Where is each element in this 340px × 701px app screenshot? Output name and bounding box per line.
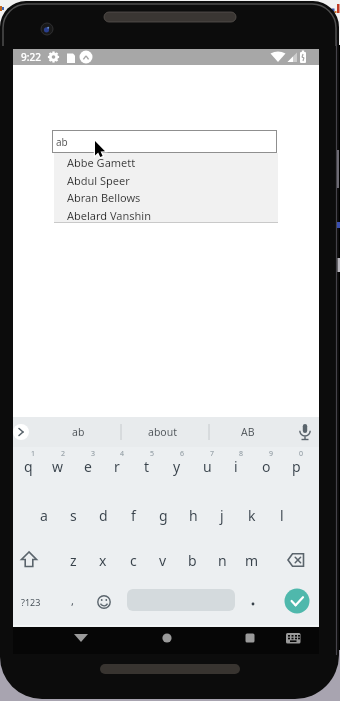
staticText: a [40, 506, 48, 525]
button[interactable]: AB [218, 421, 278, 443]
staticText: 6 [180, 449, 185, 459]
button[interactable]: ab [52, 130, 277, 153]
staticText: g [159, 506, 168, 525]
staticText: u [203, 457, 212, 476]
staticText: m [245, 551, 259, 570]
staticText: o [262, 457, 271, 476]
staticText: x [99, 551, 107, 570]
button[interactable]: g [149, 500, 177, 530]
staticText: c [130, 551, 137, 570]
button[interactable]: i [222, 451, 250, 481]
staticText: z [70, 551, 77, 570]
button[interactable]: s [59, 500, 87, 530]
staticText: j [220, 506, 224, 525]
button[interactable] [271, 588, 297, 614]
button[interactable]: d [89, 500, 117, 530]
staticText: y [173, 457, 181, 476]
staticText: i [234, 457, 238, 476]
button[interactable]: v [149, 545, 177, 575]
button[interactable]: e [74, 451, 102, 481]
button[interactable]: about [127, 421, 197, 443]
staticText: , [71, 593, 74, 608]
staticText: about [148, 425, 177, 439]
staticText: ab [72, 425, 85, 439]
staticText: e [84, 457, 92, 476]
button[interactable]: f [119, 500, 147, 530]
staticText: 9:22 [21, 50, 41, 64]
staticText: l [280, 506, 284, 525]
staticText: 7 [210, 449, 215, 459]
button[interactable]: , [62, 587, 82, 613]
staticText: AB [241, 425, 255, 439]
staticText: Abdul Speer [67, 173, 130, 188]
staticText: p [292, 457, 301, 476]
button[interactable]: a [30, 500, 58, 530]
staticText: s [70, 506, 77, 525]
button[interactable]: p [282, 451, 310, 481]
button[interactable]: b [178, 545, 206, 575]
button[interactable] [68, 627, 94, 653]
staticText: 0 [299, 449, 304, 459]
button[interactable]: m [238, 545, 266, 575]
button[interactable]: r [103, 451, 131, 481]
staticText: q [24, 457, 33, 476]
staticText: w [52, 457, 64, 476]
staticText: 8 [239, 449, 244, 459]
staticText: ?123 [21, 596, 41, 608]
button[interactable]: o [252, 451, 280, 481]
staticText: 5 [150, 449, 155, 459]
staticText: 2 [61, 449, 66, 459]
staticText: Abbe Gamett [67, 155, 136, 170]
staticText: n [218, 551, 227, 570]
staticText: v [159, 551, 167, 570]
button[interactable] [237, 627, 263, 653]
staticText: r [114, 457, 120, 476]
button[interactable]: Abdul Speer [54, 171, 278, 189]
button[interactable]: z [59, 545, 87, 575]
staticText: 1 [31, 449, 36, 459]
button[interactable]: n [208, 545, 236, 575]
button[interactable]: l [268, 500, 296, 530]
button[interactable]: Abran Bellows [54, 188, 278, 206]
staticText: 4 [120, 449, 125, 459]
button[interactable] [15, 546, 45, 574]
staticText: f [131, 506, 136, 525]
button[interactable]: ab [48, 421, 108, 443]
staticText: Abran Bellows [67, 190, 141, 205]
staticText: 9 [269, 449, 274, 459]
button[interactable] [282, 546, 312, 574]
staticText: ab [56, 135, 68, 149]
button[interactable]: j [208, 500, 236, 530]
button[interactable]: h [179, 500, 207, 530]
staticText: h [189, 506, 198, 525]
button[interactable] [280, 627, 306, 653]
button[interactable]: Abelard Vanshin [54, 206, 278, 224]
button[interactable]: c [119, 545, 147, 575]
button[interactable] [154, 627, 180, 653]
button[interactable]: k [238, 500, 266, 530]
staticText: d [99, 506, 108, 525]
button[interactable]: u [193, 451, 221, 481]
staticText: k [248, 506, 256, 525]
button[interactable]: t [133, 451, 161, 481]
button[interactable]: x [89, 545, 117, 575]
button[interactable]: w [44, 451, 72, 481]
button[interactable]: ?123 [13, 589, 49, 615]
staticText: t [144, 457, 150, 476]
button[interactable]: Abbe Gamett [54, 153, 278, 171]
staticText: 3 [91, 449, 96, 459]
button[interactable]: y [163, 451, 191, 481]
button[interactable]: q [14, 451, 42, 481]
staticText: b [188, 551, 197, 570]
staticText: Abelard Vanshin [67, 208, 152, 223]
